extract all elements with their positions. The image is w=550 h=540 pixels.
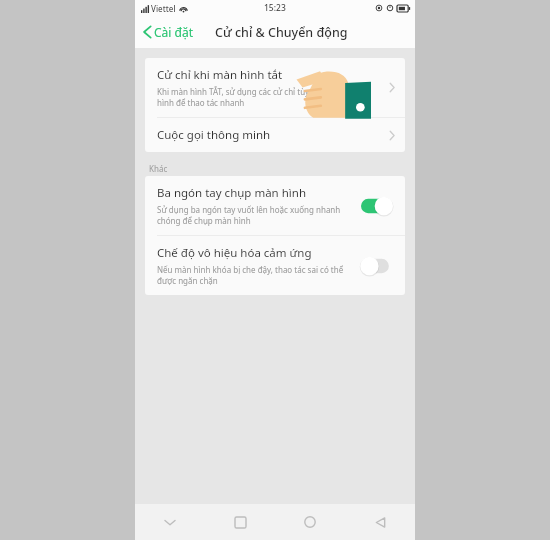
button[interactable]: Cài đặt — [135, 16, 200, 48]
staticText: Cài đặt — [154, 24, 194, 40]
staticText: Khác — [149, 163, 168, 174]
button[interactable]: Ba ngón tay chụp màn hình — [145, 176, 405, 235]
staticText: Khi màn hình TẮT, sử dụng các cử chỉ tùy… — [157, 86, 383, 108]
staticText: Nếu màn hình khóa bị che đậy, thao tác s… — [157, 264, 353, 286]
staticText: Ba ngón tay chụp màn hình — [157, 185, 306, 201]
button[interactable]: Recent apps — [205, 504, 275, 540]
staticText: 15:23 — [264, 2, 286, 14]
other: Open — [389, 82, 395, 93]
button[interactable]: Toggle on — [361, 196, 395, 216]
button[interactable]: Hide — [135, 504, 205, 540]
button[interactable]: Cử chỉ khi màn hình tắt — [145, 58, 405, 117]
staticText: Cử chỉ khi màn hình tắt — [157, 67, 283, 83]
button[interactable]: Chế độ vô hiệu hóa cảm ứng — [145, 236, 405, 295]
staticText: Sử dụng ba ngón tay vuốt lên hoặc xuống … — [157, 204, 353, 226]
other: Open — [389, 130, 395, 141]
button[interactable]: Back — [345, 504, 415, 540]
staticText: Cử chỉ & Chuyển động — [215, 24, 348, 41]
staticText: Chế độ vô hiệu hóa cảm ứng — [157, 245, 312, 261]
staticText: Viettel — [151, 3, 176, 14]
button[interactable]: Cuộc gọi thông minh — [145, 118, 405, 152]
staticText: Cuộc gọi thông minh — [157, 127, 389, 143]
button[interactable]: Toggle off — [361, 256, 395, 276]
button[interactable]: Home — [275, 504, 345, 540]
